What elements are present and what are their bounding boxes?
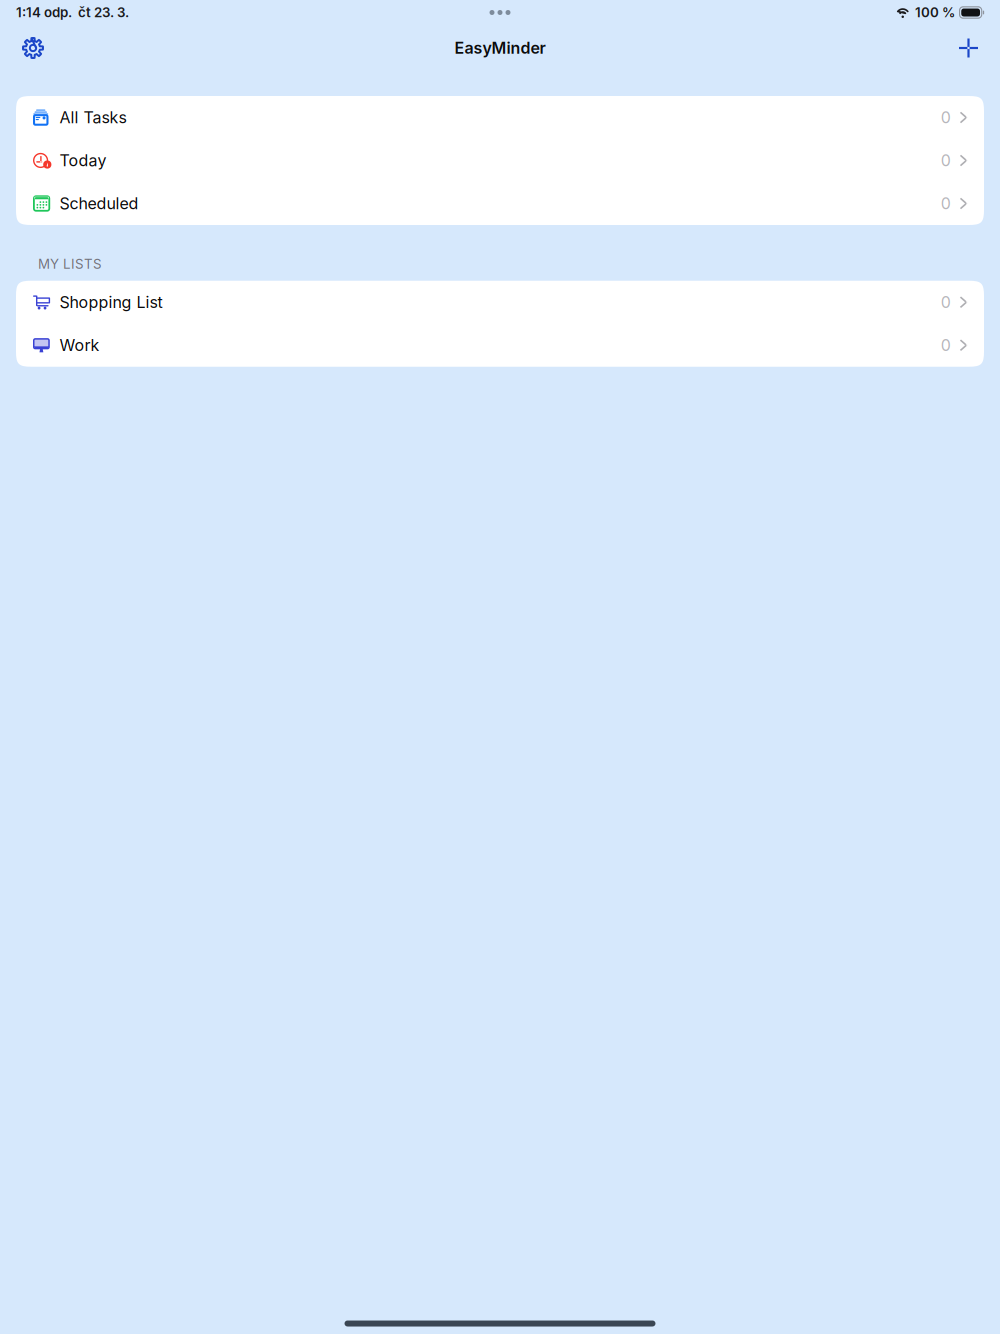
button[interactable]: New list xyxy=(951,30,986,65)
button[interactable]: Work xyxy=(16,324,984,367)
button[interactable]: Shopping List xyxy=(16,281,984,324)
staticText: All Tasks xyxy=(60,108,127,127)
staticText: Scheduled xyxy=(60,194,139,213)
staticText: 0 xyxy=(941,108,951,127)
staticText: EasyMinder xyxy=(454,39,545,57)
staticText: 0 xyxy=(941,151,951,170)
staticText: 0 xyxy=(941,194,951,213)
staticText: 0 xyxy=(941,336,951,355)
staticText: Today xyxy=(60,151,107,170)
button[interactable]: Today xyxy=(16,139,984,182)
staticText: 100 % xyxy=(915,5,955,20)
staticText: 1:14 odp. čt 23. 3. xyxy=(16,5,129,20)
staticText: 0 xyxy=(941,293,951,312)
button[interactable]: Scheduled xyxy=(16,182,984,225)
button[interactable]: All Tasks xyxy=(16,96,984,139)
staticText: Work xyxy=(60,336,100,355)
staticText: MY LISTS xyxy=(38,256,102,272)
staticText: Shopping List xyxy=(60,293,163,312)
button[interactable]: Settings xyxy=(14,29,52,67)
